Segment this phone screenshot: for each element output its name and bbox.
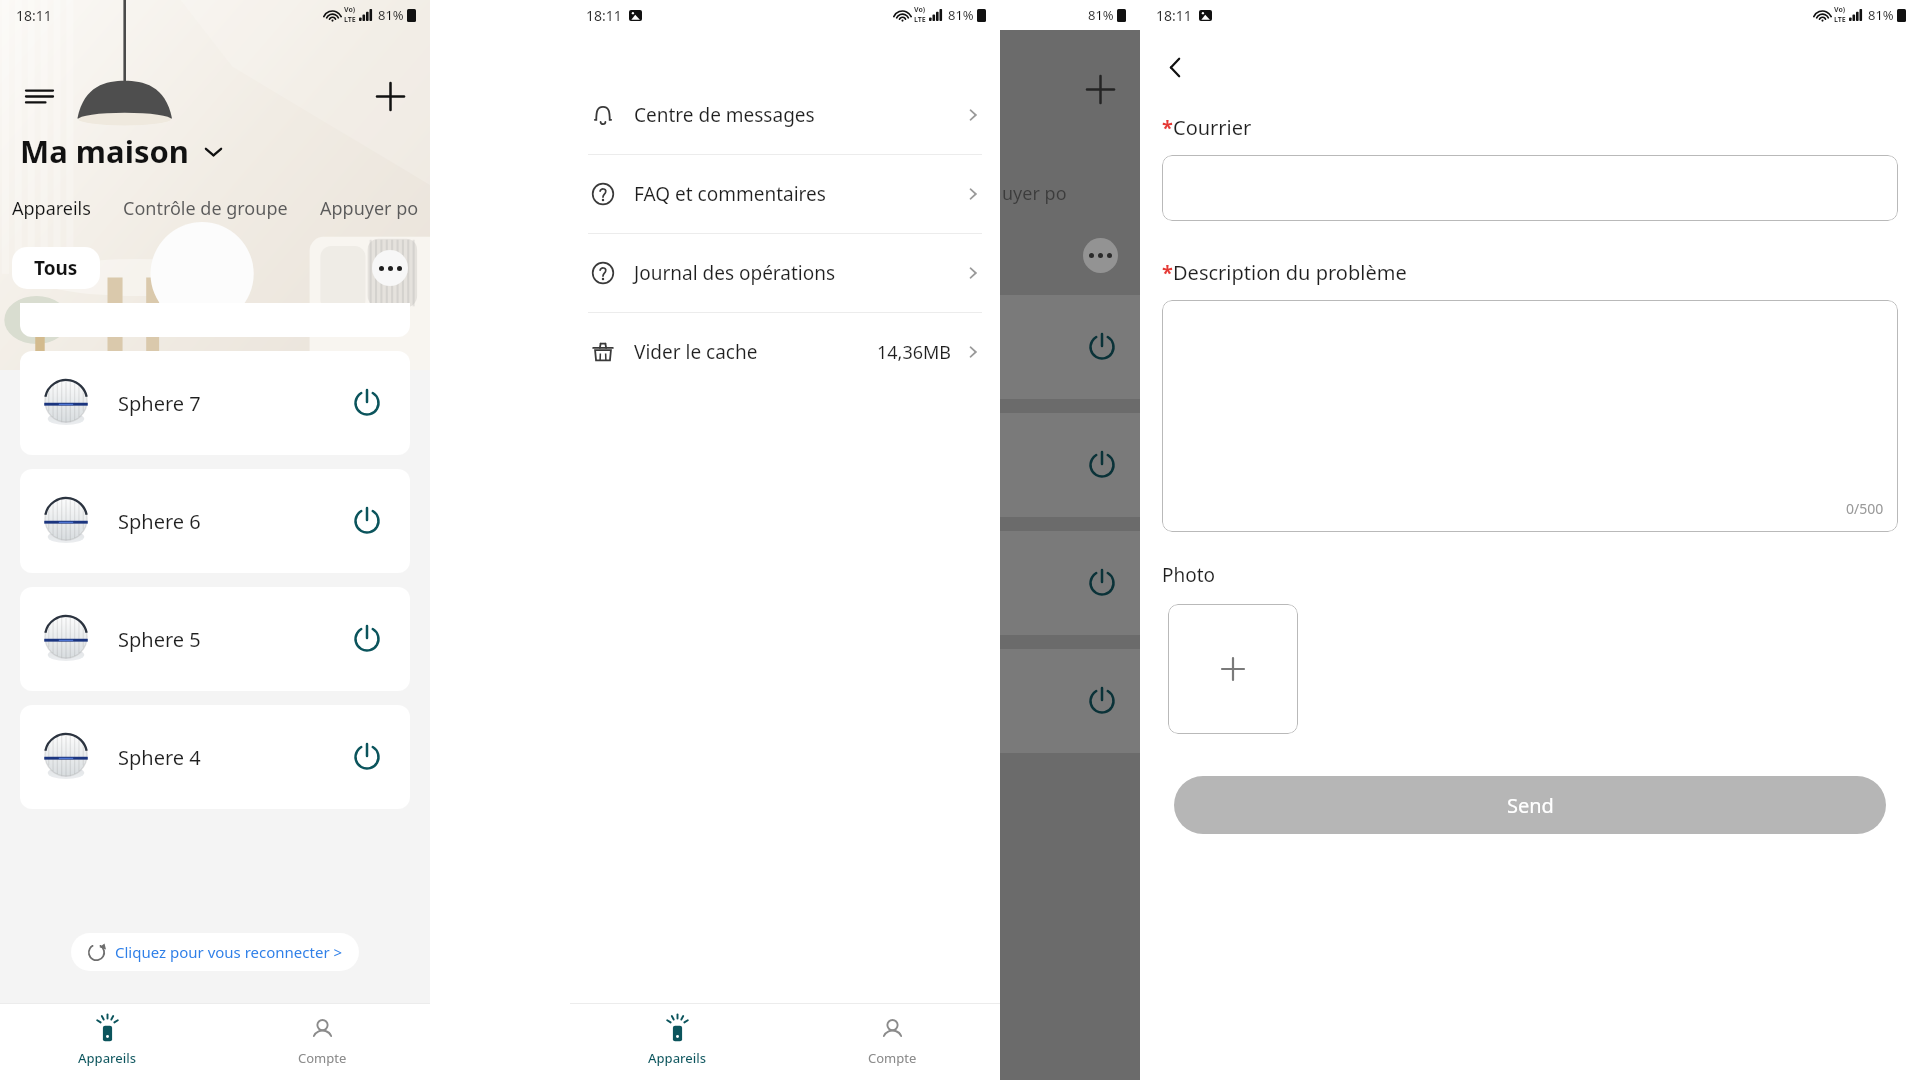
button[interactable]: Power Sphere 5 [346,618,388,660]
button[interactable]: Journal des opérations [570,234,1000,312]
button[interactable]: Contrôle de groupe [117,196,294,221]
staticText: Contrôle de groupe [123,196,288,221]
staticText: Appareils [648,1049,707,1067]
button[interactable]: Appareils [570,1004,785,1080]
staticText: Journal des opérations [634,260,836,286]
staticText: Sphere 7 [118,390,201,417]
staticText: Compte [868,1049,917,1067]
button[interactable]: Add device [368,74,412,118]
button[interactable]: Power Sphere 6 [346,500,388,542]
staticText: uyer po [1002,181,1067,206]
button[interactable]: Appuyer po [314,196,425,221]
button[interactable]: Email field [1162,155,1898,221]
staticText: Appareils [12,196,91,221]
button[interactable]: Sphere 6 [20,469,410,573]
staticText: Compte [298,1049,347,1067]
button[interactable]: Cliquez pour vous reconnecter > [71,933,359,971]
button[interactable]: Back [1152,44,1198,90]
staticText: 18:11 [16,6,52,25]
button[interactable]: Compte [785,1004,1000,1080]
staticText: LTE [914,15,926,25]
button[interactable]: Problem description field [1162,300,1898,532]
staticText: 14,36MB [877,340,952,365]
button[interactable]: Add photo [1168,604,1298,734]
staticText: Ma maison [20,130,190,172]
staticText: 81% [378,6,404,24]
button[interactable]: Sphere 7 [20,351,410,455]
button[interactable]: Ma maison [20,130,233,172]
staticText: 81% [1868,6,1894,24]
staticText: 81% [1088,6,1114,24]
button[interactable]: Compte [215,1004,430,1080]
button[interactable]: Appareils [6,196,97,221]
staticText: Appuyer po [320,196,419,221]
staticText: LTE [1834,15,1846,25]
staticText: Cliquez pour vous reconnecter > [115,942,343,962]
staticText: Sphere 5 [118,626,201,653]
button[interactable]: Power Sphere 7 [346,382,388,424]
staticText: Description du problème [1173,259,1407,286]
staticText: Appareils [78,1049,137,1067]
staticText: Vider le cache [634,339,758,365]
staticText: FAQ et commentaires [634,181,826,207]
staticText: Photo [1162,562,1216,588]
staticText: Send [1507,792,1554,819]
staticText: Vo) [1834,5,1846,15]
button[interactable]: Vider le cache [570,313,1000,391]
button[interactable]: More options [372,250,408,286]
staticText: Vo) [344,5,356,15]
staticText: 81% [948,6,974,24]
button[interactable]: Menu [18,75,60,117]
staticText: * [1162,259,1173,286]
button[interactable]: FAQ et commentaires [570,155,1000,233]
staticText: Centre de messages [634,102,815,128]
staticText: Courrier [1173,114,1252,141]
button[interactable]: Sphere 4 [20,705,410,809]
button[interactable]: Centre de messages [570,76,1000,154]
staticText: Sphere 4 [118,744,201,771]
button[interactable]: Power Sphere 4 [346,736,388,778]
staticText: Vo) [914,5,926,15]
button[interactable]: Appareils [0,1004,215,1080]
staticText: Sphere 6 [118,508,201,535]
staticText: 18:11 [586,6,622,25]
button[interactable]: Tous [12,247,100,289]
staticText: * [1162,114,1173,141]
staticText: 18:11 [1156,6,1192,25]
staticText: 0/500 [1846,499,1884,518]
button[interactable]: Send [1174,776,1886,834]
staticText: Tous [34,255,78,281]
staticText: LTE [344,15,356,25]
button[interactable]: Sphere 5 [20,587,410,691]
